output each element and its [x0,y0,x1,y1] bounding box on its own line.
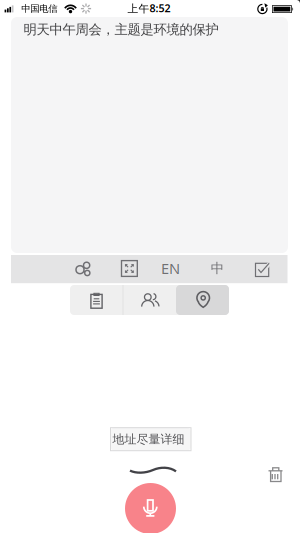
staticText: 上午8:52 [127,1,170,15]
staticText: 中 [211,260,224,276]
button[interactable]: English [155,254,185,282]
button[interactable]: Notes [70,285,123,315]
staticText: EN [161,258,180,278]
button[interactable]: Dictate [125,483,176,533]
staticText: 地址尽量详细 [112,432,184,446]
button[interactable]: Dictated text [11,17,288,253]
button[interactable]: Done [252,260,272,280]
button[interactable]: Address [176,285,229,315]
button[interactable]: Chinese [202,254,232,282]
staticText: 明天中午周会，主题是环境的保护 [23,21,218,38]
button[interactable]: Expand [119,258,139,278]
staticText: 中国电信 [21,3,57,14]
button[interactable]: Settings [72,259,94,279]
button[interactable]: Contacts [123,285,176,315]
button[interactable]: Delete [261,460,289,488]
